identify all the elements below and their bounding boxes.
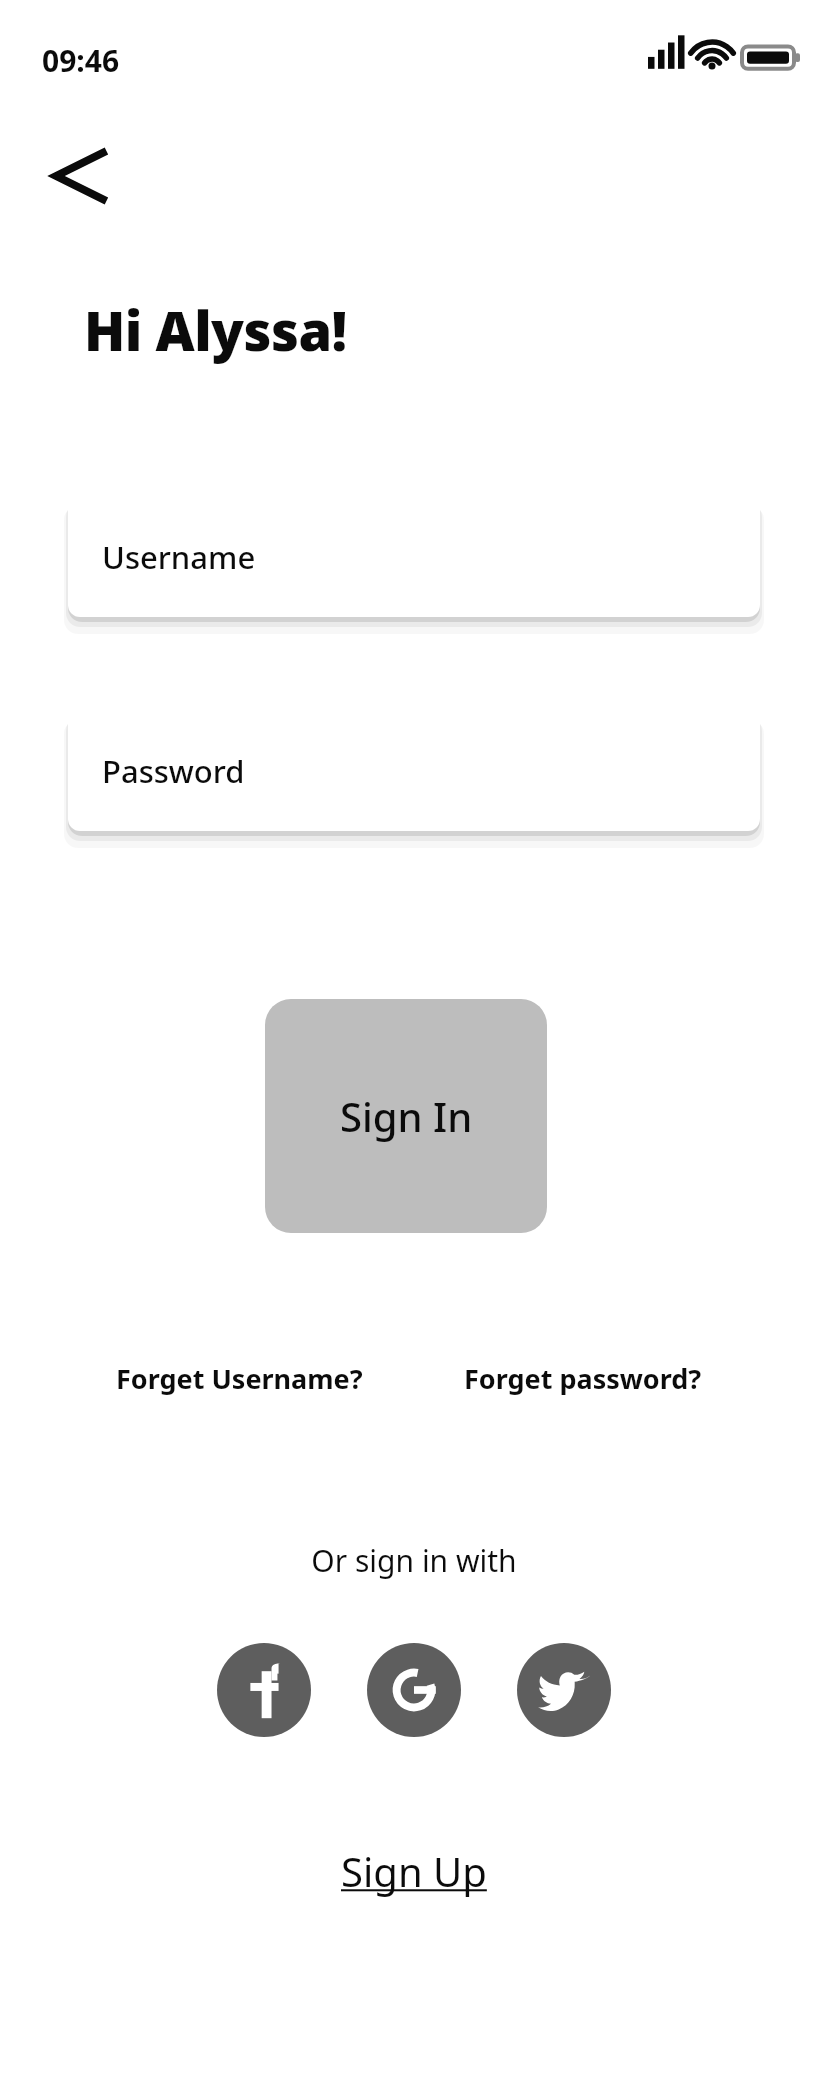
- button[interactable]: Password: [68, 710, 760, 831]
- staticText: 09:46: [42, 40, 120, 81]
- staticText: Sign In: [340, 1089, 473, 1143]
- staticText: Hi Alyssa!: [84, 293, 347, 367]
- staticText: Sign Up: [341, 1844, 487, 1898]
- button[interactable]: Sign in with Google: [367, 1643, 461, 1737]
- button[interactable]: Sign In: [265, 999, 547, 1233]
- button[interactable]: Forget Username?: [102, 1352, 377, 1405]
- staticText: Forget Username?: [116, 1360, 363, 1397]
- button[interactable]: Sign in with Twitter: [517, 1643, 611, 1737]
- button[interactable]: Sign in with Facebook: [217, 1643, 311, 1737]
- staticText: Forget password?: [464, 1360, 702, 1397]
- button[interactable]: Sign Up: [323, 1838, 505, 1904]
- staticText: Username: [102, 536, 256, 578]
- button[interactable]: Forget password?: [450, 1352, 716, 1405]
- staticText: Or sign in with: [311, 1540, 517, 1581]
- button[interactable]: Back: [36, 130, 128, 222]
- staticText: Password: [102, 750, 245, 792]
- button[interactable]: Username: [68, 496, 760, 617]
